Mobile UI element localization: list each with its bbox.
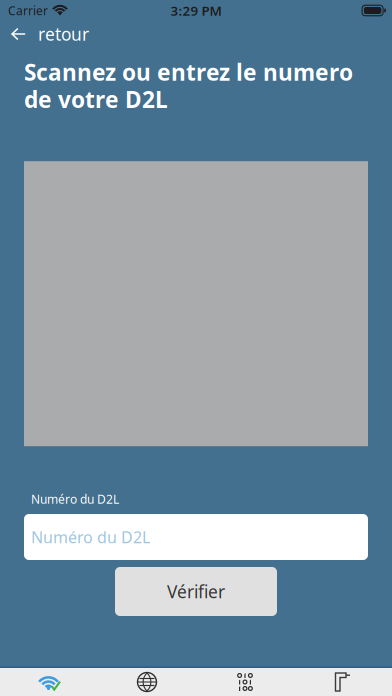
- button[interactable]: Wi-Fi connecté: [0, 668, 98, 696]
- button[interactable]: Données: [196, 668, 294, 696]
- staticText: Vérifier: [167, 580, 225, 603]
- button[interactable]: Configuration: [294, 668, 392, 696]
- staticText: Numéro du D2L: [31, 491, 119, 507]
- button[interactable]: retour: [0, 23, 130, 45]
- button[interactable]: Réseau: [98, 668, 196, 696]
- staticText: Carrier: [8, 2, 48, 18]
- staticText: Numéro du D2L: [31, 526, 150, 548]
- staticText: retour: [38, 22, 89, 45]
- staticText: Scannez ou entrez le numero de votre D2L: [24, 57, 353, 114]
- staticText: 3:29 PM: [170, 2, 221, 19]
- button[interactable]: Vérifier: [115, 567, 277, 616]
